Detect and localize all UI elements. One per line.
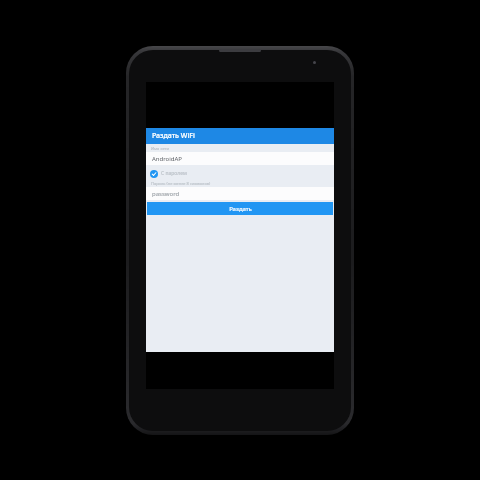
button[interactable]: AndroidAP [146,152,334,165]
button[interactable]: Раздать WiFi [146,128,334,144]
staticText: Пароль (не менее 8 символов) [151,181,211,186]
staticText: password [152,190,180,198]
button[interactable]: Раздать [147,202,333,215]
button[interactable]: password [146,187,334,200]
staticText: Имя сети [151,146,169,151]
staticText: Раздать WiFi [152,131,195,141]
staticText: AndroidAP [152,155,182,163]
staticText: С паролем [161,170,187,177]
other: Password protected toggle [150,170,158,178]
button[interactable]: Password protected toggle [146,168,334,179]
staticText: Раздать [229,205,252,213]
